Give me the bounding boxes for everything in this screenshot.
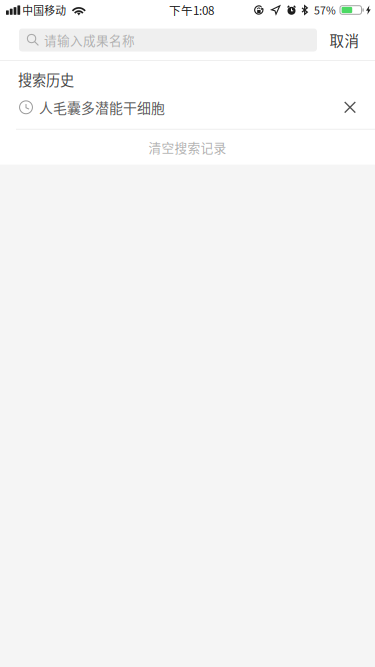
staticText: 取消	[329, 29, 359, 50]
staticText: 请输入成果名称	[44, 31, 135, 49]
button[interactable]: 人毛囊多潜能干细胞	[0, 90, 375, 129]
button[interactable]: 清空搜索记录	[0, 130, 375, 165]
button[interactable]: 取消	[317, 24, 372, 55]
staticText: 下午1:08	[169, 2, 214, 18]
staticText: 人毛囊多潜能干细胞	[39, 97, 165, 117]
staticText: 中国移动	[22, 2, 66, 18]
staticText: 搜索历史	[18, 69, 74, 90]
staticText: 57%	[314, 2, 336, 18]
staticText: 清空搜索记录	[148, 138, 226, 156]
